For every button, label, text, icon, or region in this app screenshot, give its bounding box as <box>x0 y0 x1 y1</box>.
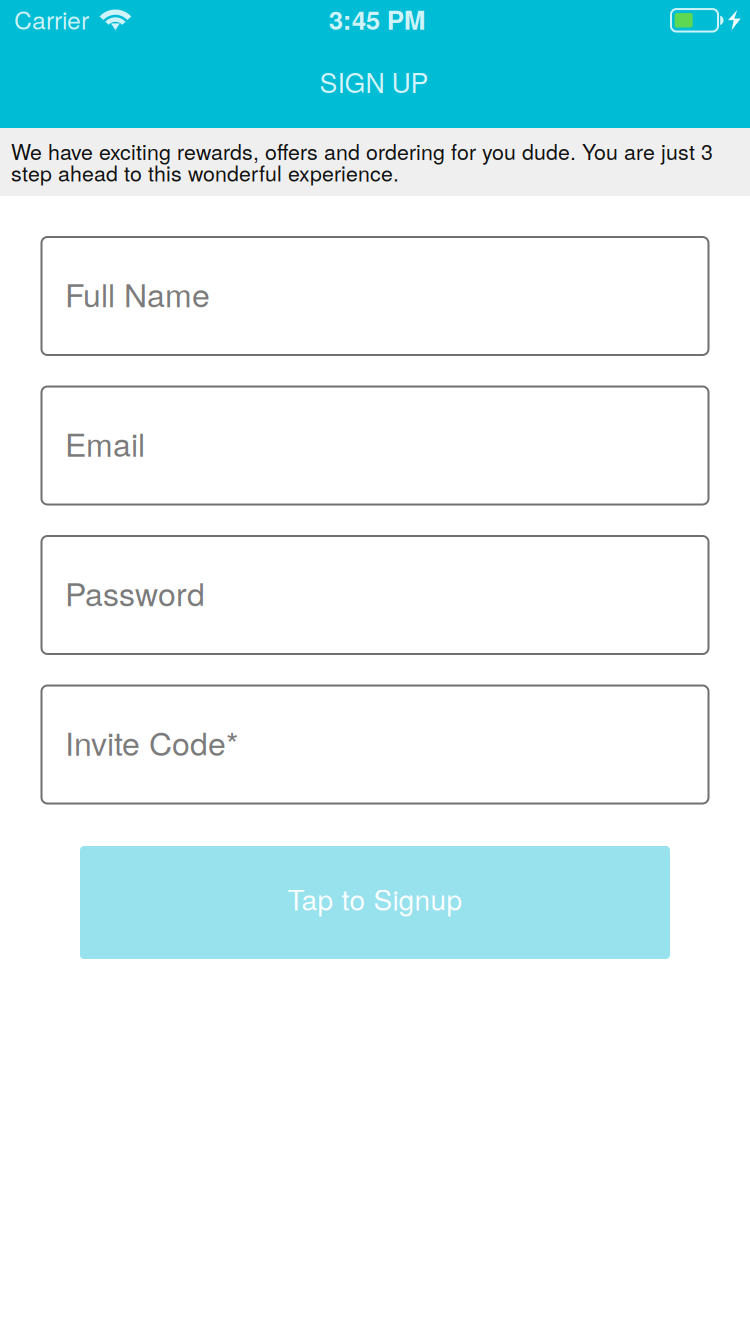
staticText: Invite Code* <box>65 719 238 765</box>
staticText: Full Name <box>65 271 210 316</box>
staticText: Carrier <box>14 1 89 36</box>
staticText: 3:45 PM <box>329 1 426 38</box>
staticText: Tap to Signup <box>287 878 462 919</box>
button[interactable]: Tap to Signup <box>80 846 670 959</box>
staticText: Email <box>65 420 145 466</box>
staticText: We have exciting rewards, offers and ord… <box>11 140 713 183</box>
button[interactable]: Email <box>41 386 708 504</box>
staticText: SIGN UP <box>319 62 428 101</box>
staticText: Password <box>65 570 205 615</box>
button[interactable]: Full Name <box>41 237 708 355</box>
button[interactable]: Invite Code* <box>41 685 708 803</box>
button[interactable]: Password <box>41 536 708 654</box>
